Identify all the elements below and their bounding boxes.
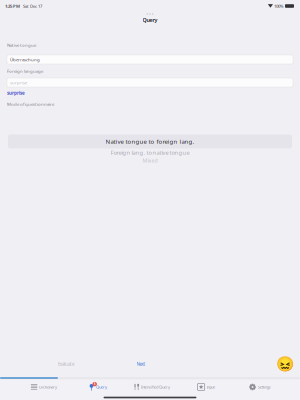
- staticText: Dictionary: [39, 384, 57, 390]
- staticText: Input: [206, 384, 214, 390]
- button[interactable]: Next: [106, 358, 176, 370]
- button[interactable]: Mood: [278, 357, 292, 371]
- staticText: Settings: [258, 384, 271, 390]
- staticText: 😖: [276, 355, 294, 373]
- button[interactable]: Intensified Query: [125, 379, 179, 395]
- button[interactable]: Dictionary: [17, 379, 71, 395]
- staticText: Intensified Query: [141, 384, 170, 390]
- staticText: 8: [94, 382, 96, 386]
- staticText: Mode of questionnaire: [7, 101, 54, 107]
- staticText: Mixed: [142, 157, 157, 164]
- staticText: Query: [96, 384, 107, 390]
- button[interactable]: Settings: [233, 379, 287, 395]
- button[interactable]: Evaluate: [26, 358, 106, 370]
- staticText: Native tongue: [7, 42, 36, 48]
- staticText: 1:25 PM: [5, 3, 20, 9]
- staticText: 100%: [273, 3, 284, 9]
- staticText: surprise: [10, 79, 27, 85]
- staticText: Foreign lang. to native tongue: [110, 149, 189, 156]
- staticText: Next: [136, 361, 145, 367]
- staticText: Native tongue to foreign lang.: [105, 137, 194, 146]
- staticText: surprise: [7, 90, 25, 96]
- staticText: Überraschung: [10, 56, 40, 62]
- staticText: Query: [142, 16, 157, 24]
- button[interactable]: 8: [71, 379, 125, 395]
- button[interactable]: Input: [179, 379, 233, 395]
- staticText: Evaluate: [58, 361, 74, 367]
- staticText: Sat Dec 17: [20, 3, 42, 9]
- staticText: Foreign language: [7, 68, 43, 74]
